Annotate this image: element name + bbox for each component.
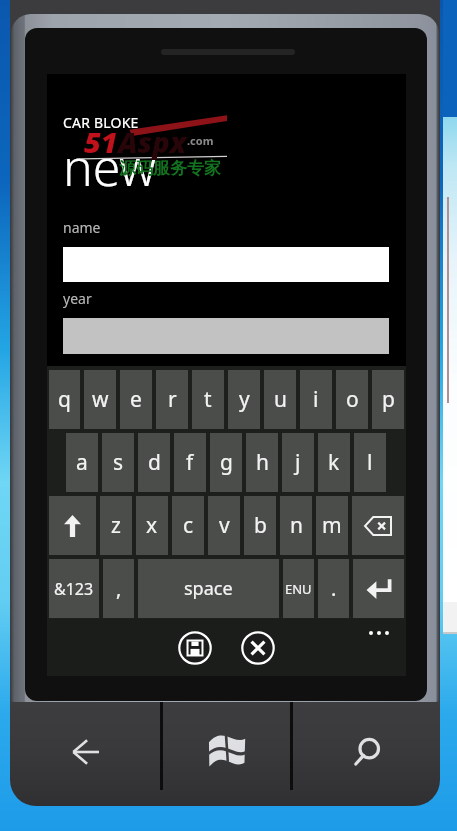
button[interactable]: , [103,559,134,618]
staticText: o [346,385,359,414]
staticText: z [111,511,121,540]
staticText: , [116,575,122,602]
button[interactable]: s [102,433,134,492]
staticText: f [186,448,194,477]
staticText: 51 [84,122,118,161]
button[interactable]: x [136,496,168,555]
button[interactable]: v [208,496,240,555]
staticText: x [146,511,158,540]
button[interactable]: Cancel [241,631,275,665]
button[interactable]: e [120,370,152,429]
staticText: ENU [285,580,312,598]
button[interactable]: Search [293,702,440,802]
button[interactable]: t [192,370,224,429]
staticText: w [92,385,109,414]
button[interactable]: u [264,370,296,429]
button[interactable]: k [318,433,350,492]
staticText: c [183,511,194,540]
button[interactable]: Back [10,702,160,802]
staticText: n [290,511,303,540]
staticText: e [130,385,142,414]
button[interactable]: a [66,433,98,492]
button[interactable]: l [354,433,386,492]
button[interactable]: Save [178,631,212,665]
button[interactable]: &123 [49,559,99,618]
staticText: name [63,218,101,237]
button[interactable]: g [210,433,242,492]
staticText: 源码服务专家 [119,158,221,179]
staticText: h [256,448,269,477]
staticText: m [322,511,342,540]
staticText: .com [187,133,214,148]
button[interactable]: ENU [283,559,314,618]
staticText: s [113,448,124,477]
staticText: d [148,448,161,477]
button[interactable]: More [361,621,397,645]
staticText: CAR BLOKE [63,113,139,132]
staticText: u [274,385,287,414]
button[interactable]: w [84,370,116,429]
button[interactable]: d [138,433,170,492]
button[interactable]: Backspace [352,496,404,555]
staticText: r [168,385,177,414]
button[interactable]: f [174,433,206,492]
button[interactable]: Start [162,702,290,802]
staticText: k [328,448,340,477]
staticText: t [204,385,212,414]
staticText: v [219,511,230,540]
button[interactable]: r [156,370,188,429]
button[interactable]: z [100,496,132,555]
staticText: i [313,385,319,414]
button[interactable]: p [372,370,404,429]
button[interactable]: h [246,433,278,492]
staticText: j [295,448,301,477]
staticText: &123 [54,578,94,600]
staticText: . [331,575,337,602]
button[interactable]: b [244,496,276,555]
button[interactable]: Enter [353,559,404,618]
button[interactable]: m [316,496,348,555]
staticText: space [184,576,233,601]
staticText: l [367,448,373,477]
button[interactable]: o [336,370,368,429]
button[interactable]: j [282,433,314,492]
button[interactable]: i [300,370,332,429]
staticText: a [76,448,88,477]
button[interactable]: n [280,496,312,555]
staticText: year [63,289,92,308]
button[interactable]: . [318,559,349,618]
button[interactable]: space [138,559,279,618]
staticText: y [239,385,250,414]
button[interactable]: c [172,496,204,555]
staticText: Aspx [118,122,187,161]
staticText: q [58,385,71,414]
button[interactable]: y [228,370,260,429]
staticText: b [254,511,267,540]
button[interactable]: Shift [49,496,96,555]
staticText: new [63,133,157,201]
staticText: g [220,448,233,477]
button[interactable]: q [49,370,80,429]
staticText: p [382,385,395,414]
